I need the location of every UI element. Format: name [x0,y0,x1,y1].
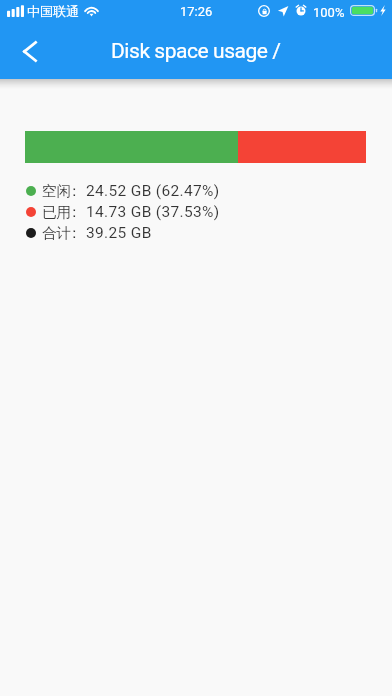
staticText: Disk space usage / [111,39,281,64]
staticText: ： [67,203,76,221]
staticText: ： [67,224,76,242]
staticText: 14.73 GB (37.53%) [86,203,220,221]
staticText: 17:26 [180,4,213,19]
button[interactable]: Back [9,31,50,72]
staticText: 24.52 GB (62.47%) [86,182,220,200]
staticText: 39.25 GB [86,224,152,242]
staticText: 合计 [42,224,72,242]
staticText: 中国联通 [27,3,79,19]
staticText: 空闲 [42,182,72,200]
staticText: ： [67,182,76,200]
staticText: 100% [313,5,345,20]
staticText: 已用 [42,203,72,221]
